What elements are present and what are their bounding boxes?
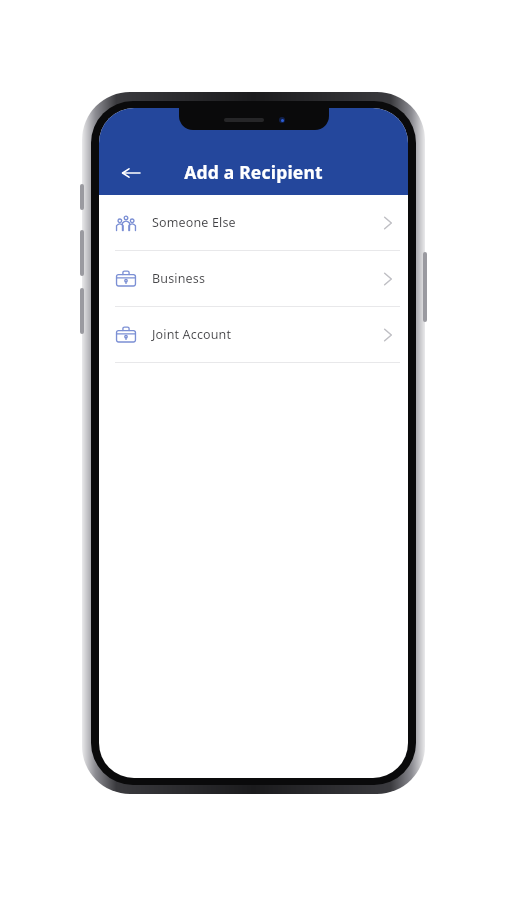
staticText: Someone Else [152, 214, 236, 231]
staticText: Add a Recipient [184, 160, 323, 184]
staticText: Joint Account [152, 326, 232, 343]
button[interactable]: Business [99, 251, 408, 306]
staticText: Business [152, 270, 206, 287]
button[interactable]: Back [109, 151, 153, 195]
button[interactable]: Joint Account [99, 307, 408, 362]
button[interactable]: Someone Else [99, 195, 408, 250]
